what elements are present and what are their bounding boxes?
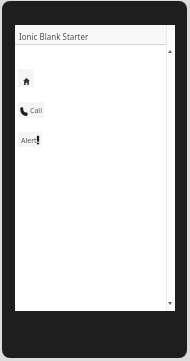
staticText: Alert: [21, 136, 37, 146]
staticText: Ionic Blank Starter: [19, 31, 89, 42]
button[interactable]: Scroll: [166, 25, 175, 311]
button[interactable]: Call: [18, 102, 44, 118]
button[interactable]: Home: [18, 69, 34, 87]
button[interactable]: Alert: [18, 132, 42, 147]
staticText: Call: [30, 106, 42, 116]
